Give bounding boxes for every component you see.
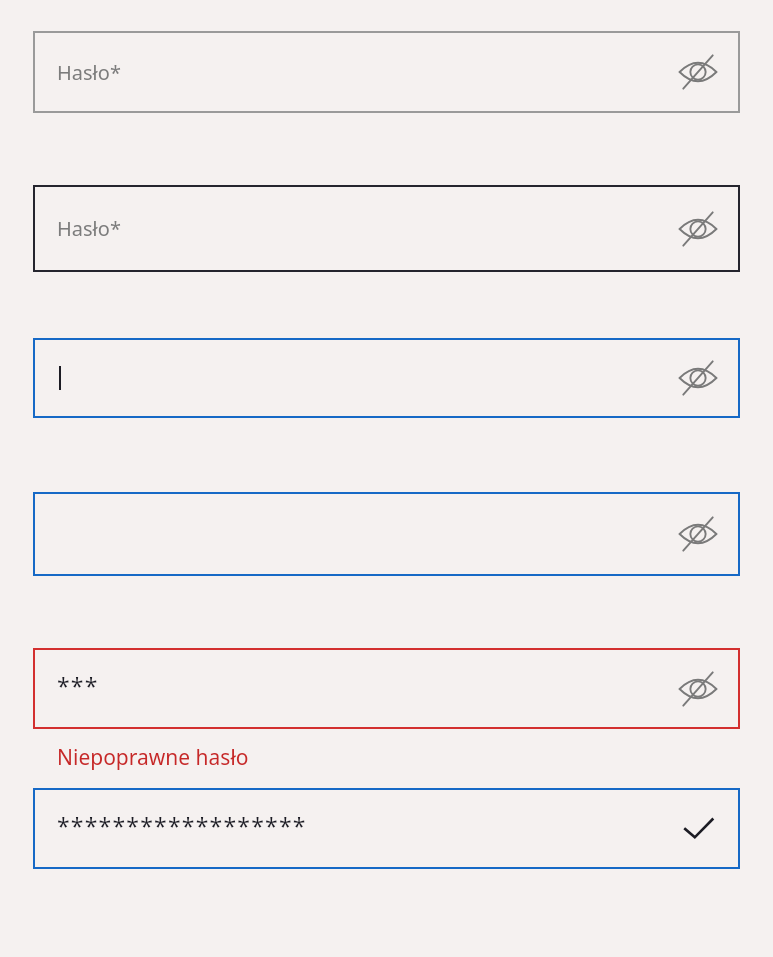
staticText: Hasło* xyxy=(57,215,121,242)
button[interactable]: Pokaż hasło xyxy=(678,363,718,393)
button[interactable]: Pokaż hasło xyxy=(678,214,718,244)
button[interactable]: Pokaż hasło xyxy=(33,338,740,418)
button[interactable]: ****************** xyxy=(33,788,740,869)
staticText: Hasło* xyxy=(57,59,121,86)
staticText: *** xyxy=(57,670,99,701)
button[interactable]: *** xyxy=(33,648,740,729)
staticText: Niepoprawne hasło xyxy=(57,743,249,772)
button[interactable]: Hasło* xyxy=(33,31,740,113)
button[interactable]: Pokaż hasło xyxy=(678,57,718,87)
button[interactable]: Pokaż hasło xyxy=(33,492,740,576)
button[interactable]: Pokaż hasło xyxy=(678,519,718,549)
button[interactable]: Hasło poprawne xyxy=(678,813,718,845)
staticText: ****************** xyxy=(57,810,307,841)
button[interactable]: Pokaż hasło xyxy=(678,674,718,704)
button[interactable]: Hasło* xyxy=(33,185,740,272)
